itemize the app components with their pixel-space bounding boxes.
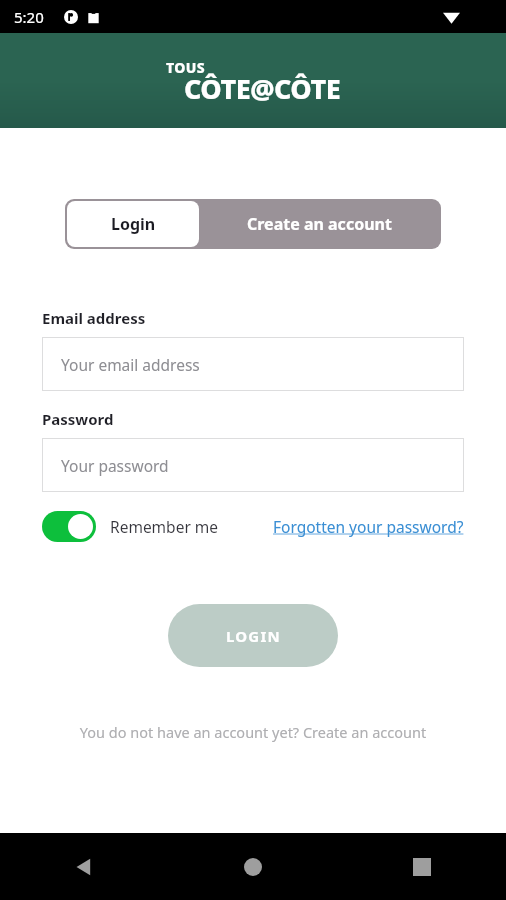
- staticText: LOGIN: [226, 626, 281, 646]
- button[interactable]: Recent apps: [337, 833, 506, 900]
- button[interactable]: Your password: [42, 438, 464, 492]
- staticText: Email address: [42, 308, 146, 328]
- staticText: Remember me: [110, 516, 219, 537]
- staticText: TOUS: [166, 58, 206, 77]
- button[interactable]: Your email address: [42, 337, 464, 391]
- button[interactable]: Remember me toggle: [42, 511, 96, 542]
- staticText: Your password: [61, 455, 169, 476]
- button[interactable]: Create an account: [199, 201, 439, 247]
- button[interactable]: Home: [168, 833, 337, 900]
- staticText: CÔTE@CÔTE: [184, 70, 341, 107]
- staticText: Create an account: [247, 213, 392, 235]
- button[interactable]: Login: [67, 201, 199, 247]
- button[interactable]: LOGIN: [168, 604, 338, 667]
- staticText: Your email address: [61, 354, 200, 375]
- button[interactable]: You do not have an account yet? Create a…: [0, 722, 506, 742]
- button[interactable]: Back: [0, 833, 168, 900]
- staticText: 5:20: [14, 7, 44, 27]
- button[interactable]: Forgotten your password?: [273, 516, 464, 537]
- staticText: Login: [111, 213, 156, 235]
- staticText: Password: [42, 409, 114, 429]
